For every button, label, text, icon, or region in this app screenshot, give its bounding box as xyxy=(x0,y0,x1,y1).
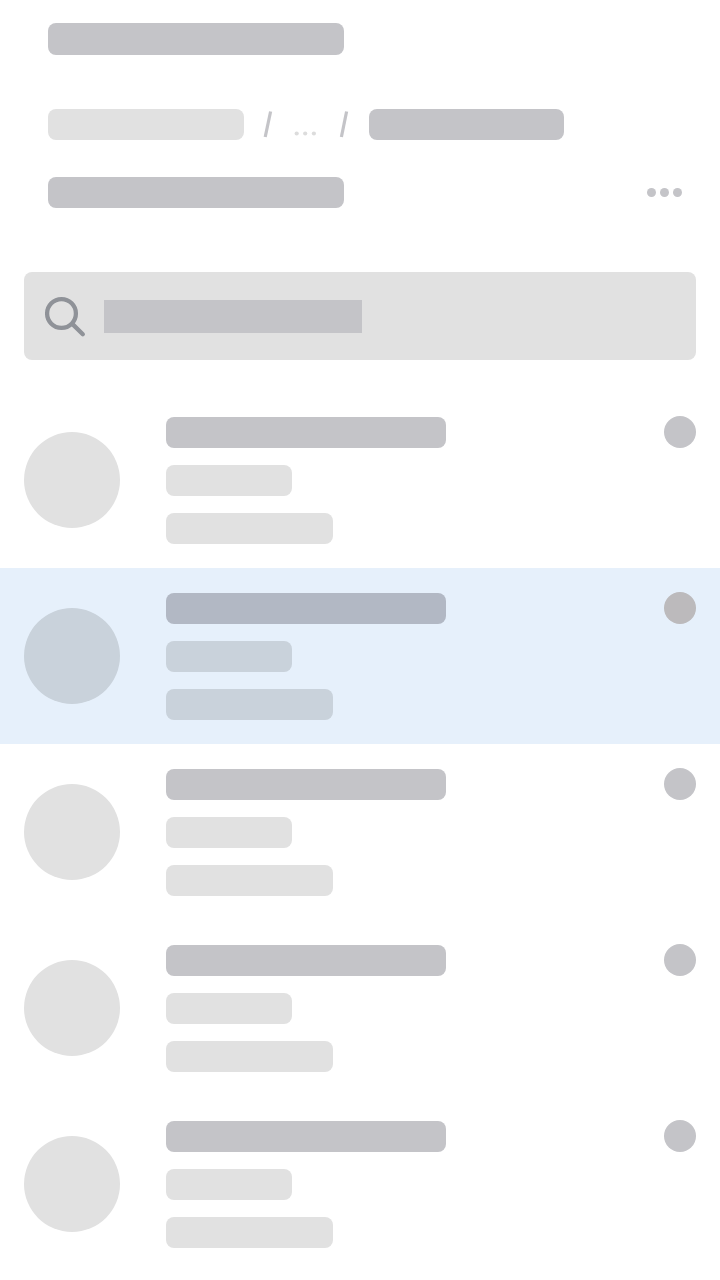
button[interactable]: Row action xyxy=(0,568,720,744)
button[interactable]: Breadcrumb current xyxy=(369,109,564,140)
button[interactable]: Row action xyxy=(664,592,696,624)
button[interactable]: Row action xyxy=(664,768,696,800)
button[interactable]: Row action xyxy=(664,1120,696,1152)
button[interactable]: Row action xyxy=(0,392,720,568)
button[interactable]: Row action xyxy=(664,944,696,976)
button[interactable]: Row action xyxy=(664,416,696,448)
button[interactable]: More options xyxy=(636,177,692,208)
button[interactable]: Row action xyxy=(0,744,720,920)
button[interactable]: Row action xyxy=(0,920,720,1096)
button[interactable]: Row action xyxy=(0,1096,720,1272)
button[interactable]: Search xyxy=(24,272,696,360)
